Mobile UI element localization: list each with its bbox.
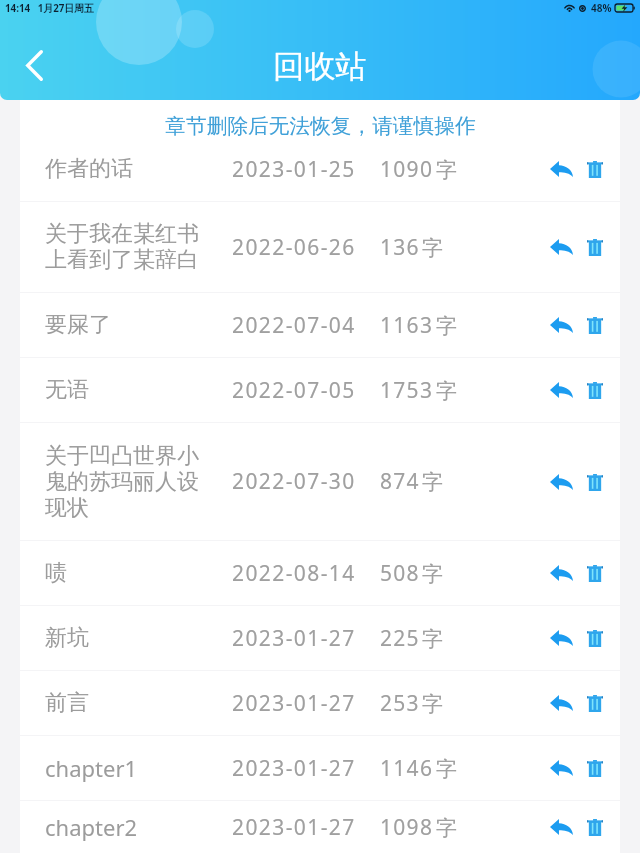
staticText: chapter2 xyxy=(45,812,138,842)
staticText: 14:14 1月27日周五 xyxy=(5,2,94,15)
staticText: 字 xyxy=(436,378,459,404)
staticText: 508 xyxy=(380,559,420,588)
button[interactable]: 啧 xyxy=(20,541,620,605)
button[interactable]: 新坑 xyxy=(20,606,620,670)
button[interactable]: Delete xyxy=(578,556,612,590)
staticText: 要屎了 xyxy=(45,311,111,339)
staticText: 2022-07-04 xyxy=(232,311,356,340)
button[interactable]: Restore xyxy=(544,810,578,844)
staticText: 2022-07-30 xyxy=(232,467,356,496)
staticText: 253 xyxy=(380,689,420,718)
button[interactable]: 前言 xyxy=(20,671,620,735)
staticText: 1753 xyxy=(380,376,434,405)
staticText: 2023-01-27 xyxy=(232,754,356,783)
button[interactable]: Restore xyxy=(544,308,578,342)
button[interactable]: 关于我在某红书 上看到了某辞白 xyxy=(20,202,620,292)
staticText: 225 xyxy=(380,624,420,653)
staticText: 2023-01-27 xyxy=(232,813,356,842)
staticText: 作者的话 xyxy=(45,155,133,183)
button[interactable]: Delete xyxy=(578,152,612,186)
staticText: 字 xyxy=(436,756,459,782)
staticText: 字 xyxy=(422,469,445,495)
staticText: 2023-01-27 xyxy=(232,689,356,718)
staticText: 字 xyxy=(422,691,445,717)
button[interactable]: 要屎了 xyxy=(20,293,620,357)
staticText: 136 xyxy=(380,233,420,262)
staticText: 关于我在某红书 上看到了某辞白 xyxy=(45,220,199,274)
staticText: 字 xyxy=(436,313,459,339)
button[interactable]: Restore xyxy=(544,686,578,720)
button[interactable]: Delete xyxy=(578,373,612,407)
staticText: 2022-06-26 xyxy=(232,233,356,262)
button[interactable]: 作者的话 xyxy=(20,137,620,201)
staticText: 啧 xyxy=(45,559,67,587)
button[interactable]: Delete xyxy=(578,230,612,264)
staticText: 1090 xyxy=(380,155,434,184)
staticText: 48% xyxy=(591,1,612,15)
button[interactable]: Delete xyxy=(578,621,612,655)
staticText: 关于凹凸世界小 鬼的苏玛丽人设 现状 xyxy=(45,442,199,522)
staticText: 874 xyxy=(380,467,420,496)
staticText: 前言 xyxy=(45,689,89,717)
button[interactable]: Restore xyxy=(544,751,578,785)
button[interactable]: Restore xyxy=(544,373,578,407)
button[interactable]: Restore xyxy=(544,152,578,186)
staticText: 1098 xyxy=(380,813,434,842)
button[interactable]: 关于凹凸世界小 鬼的苏玛丽人设 现状 xyxy=(20,423,620,540)
button[interactable]: Delete xyxy=(578,465,612,499)
button[interactable]: Back xyxy=(11,42,57,88)
staticText: 字 xyxy=(422,626,445,652)
button[interactable]: Restore xyxy=(544,230,578,264)
staticText: chapter1 xyxy=(45,753,138,783)
button[interactable]: Delete xyxy=(578,686,612,720)
button[interactable]: chapter2 xyxy=(20,801,620,853)
staticText: 字 xyxy=(422,235,445,261)
staticText: 字 xyxy=(422,561,445,587)
button[interactable]: Restore xyxy=(544,621,578,655)
button[interactable]: Restore xyxy=(544,556,578,590)
button[interactable]: Delete xyxy=(578,810,612,844)
staticText: 2022-08-14 xyxy=(232,559,356,588)
staticText: 2022-07-05 xyxy=(232,376,356,405)
staticText: 回收站 xyxy=(273,47,367,86)
staticText: 无语 xyxy=(45,376,89,404)
button[interactable]: chapter1 xyxy=(20,736,620,800)
staticText: 1146 xyxy=(380,754,434,783)
staticText: 章节删除后无法恢复，请谨慎操作 xyxy=(165,113,476,139)
button[interactable]: 无语 xyxy=(20,358,620,422)
staticText: 2023-01-25 xyxy=(232,155,356,184)
button[interactable]: Delete xyxy=(578,308,612,342)
staticText: 1163 xyxy=(380,311,434,340)
button[interactable]: Restore xyxy=(544,465,578,499)
staticText: 新坑 xyxy=(45,624,89,652)
staticText: 字 xyxy=(436,157,459,183)
button[interactable]: Delete xyxy=(578,751,612,785)
staticText: 字 xyxy=(436,815,459,841)
staticText: 2023-01-27 xyxy=(232,624,356,653)
